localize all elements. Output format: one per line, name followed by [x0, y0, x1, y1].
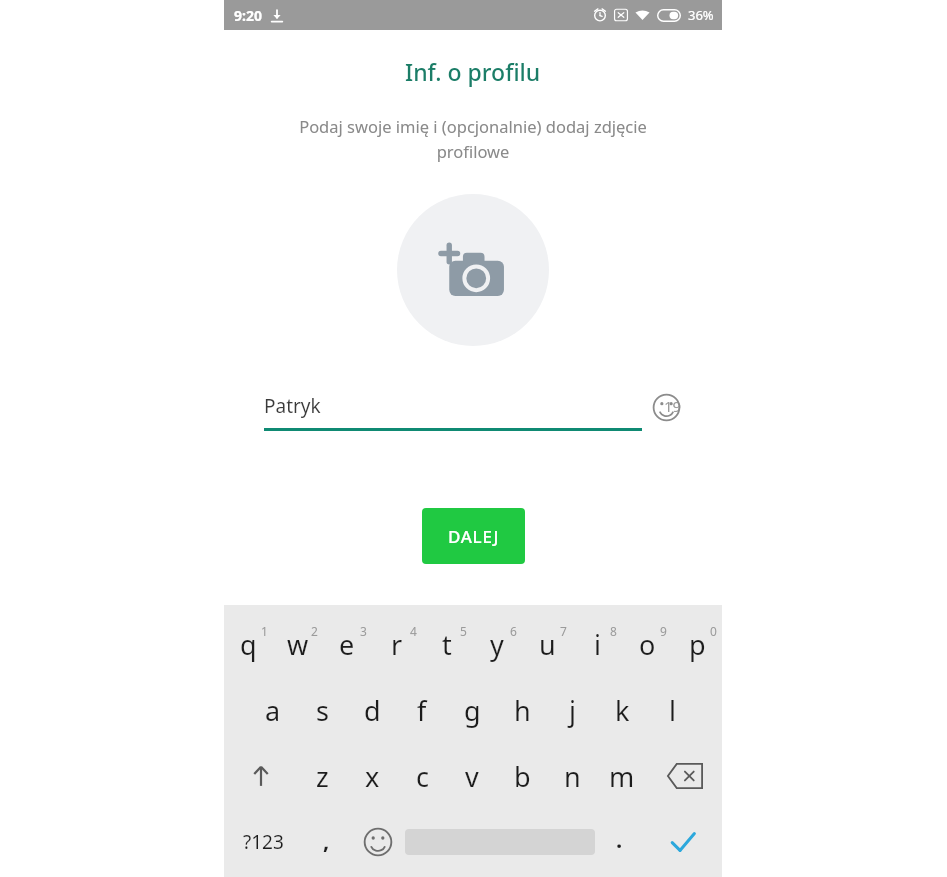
- staticText: u: [539, 626, 556, 663]
- staticText: Patryk: [264, 393, 321, 419]
- button[interactable]: c: [397, 743, 447, 809]
- button[interactable]: r: [372, 611, 422, 677]
- staticText: o: [639, 626, 656, 663]
- staticText: Inf. o profilu: [405, 56, 541, 87]
- button[interactable]: Backspace: [647, 743, 722, 809]
- staticText: s: [316, 692, 329, 729]
- button[interactable]: b: [497, 743, 547, 809]
- button[interactable]: k: [597, 677, 647, 743]
- staticText: e: [339, 626, 355, 663]
- staticText: ?123: [243, 829, 284, 855]
- button[interactable]: ?123: [224, 809, 302, 875]
- staticText: DALEJ: [448, 525, 500, 548]
- staticText: .: [616, 824, 623, 854]
- button[interactable]: Dodaj zdjęcie profilowe: [397, 194, 549, 346]
- staticText: Podaj swoje imię i (opcjonalnie) dodaj z…: [276, 115, 670, 162]
- button[interactable]: i: [572, 611, 622, 677]
- staticText: 3: [360, 623, 367, 639]
- staticText: q: [240, 626, 257, 663]
- button[interactable]: m: [597, 743, 647, 809]
- staticText: i: [594, 626, 601, 663]
- staticText: ,: [323, 825, 330, 855]
- button[interactable]: q: [224, 611, 273, 677]
- button[interactable]: o: [622, 611, 672, 677]
- staticText: v: [465, 758, 479, 795]
- button[interactable]: z: [298, 743, 347, 809]
- staticText: g: [464, 692, 481, 729]
- staticText: c: [416, 758, 429, 795]
- button[interactable]: Spacja: [405, 809, 595, 875]
- staticText: k: [615, 692, 630, 729]
- button[interactable]: v: [447, 743, 497, 809]
- button[interactable]: DALEJ: [422, 508, 525, 564]
- staticText: 4: [410, 623, 417, 639]
- button[interactable]: Enter: [644, 809, 722, 875]
- button[interactable]: d: [347, 677, 397, 743]
- staticText: m: [609, 758, 635, 795]
- staticText: 0: [710, 623, 717, 639]
- button[interactable]: Shift: [224, 743, 298, 809]
- staticText: 19: [664, 396, 682, 416]
- button[interactable]: a: [248, 677, 297, 743]
- staticText: 8: [610, 623, 617, 639]
- button[interactable]: Emoji: [650, 391, 682, 423]
- button[interactable]: w: [273, 611, 322, 677]
- staticText: 9: [660, 623, 667, 639]
- button[interactable]: x: [347, 743, 397, 809]
- staticText: 6: [510, 623, 517, 639]
- staticText: x: [365, 758, 380, 795]
- staticText: 7: [560, 623, 567, 639]
- staticText: f: [417, 692, 427, 729]
- button[interactable]: n: [547, 743, 597, 809]
- staticText: 9:20: [234, 6, 262, 25]
- staticText: 5: [460, 623, 467, 639]
- button[interactable]: j: [547, 677, 597, 743]
- staticText: n: [564, 758, 581, 795]
- button[interactable]: e: [322, 611, 372, 677]
- button[interactable]: y: [472, 611, 522, 677]
- staticText: p: [689, 626, 706, 663]
- button[interactable]: t: [422, 611, 472, 677]
- staticText: z: [316, 758, 329, 795]
- staticText: 2: [311, 623, 318, 639]
- staticText: d: [364, 692, 381, 729]
- button[interactable]: Patryk: [264, 393, 664, 419]
- staticText: r: [391, 626, 403, 663]
- button[interactable]: u: [522, 611, 572, 677]
- button[interactable]: f: [397, 677, 447, 743]
- staticText: l: [669, 692, 676, 729]
- staticText: w: [287, 626, 309, 663]
- button[interactable]: l: [647, 677, 697, 743]
- button[interactable]: s: [297, 677, 347, 743]
- button[interactable]: p: [672, 611, 722, 677]
- staticText: j: [569, 692, 576, 729]
- button[interactable]: g: [447, 677, 497, 743]
- button[interactable]: .: [595, 809, 644, 875]
- button[interactable]: Emoji: [351, 809, 405, 875]
- button[interactable]: ,: [302, 809, 351, 875]
- staticText: y: [490, 626, 504, 663]
- staticText: 1: [261, 623, 268, 639]
- button[interactable]: h: [497, 677, 547, 743]
- staticText: b: [514, 758, 531, 795]
- staticText: 36%: [688, 6, 714, 24]
- staticText: a: [265, 692, 281, 729]
- staticText: h: [514, 692, 531, 729]
- staticText: t: [442, 626, 452, 663]
